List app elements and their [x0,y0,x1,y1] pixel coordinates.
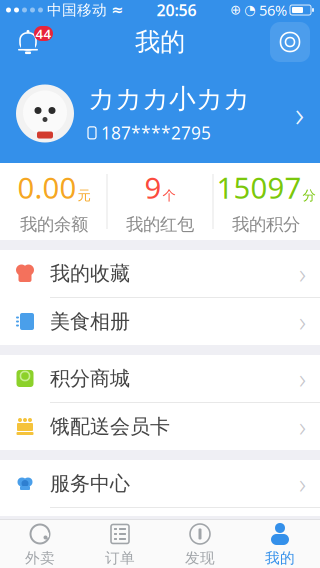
staticText: › [299,409,306,444]
button[interactable]: 15097 [213,163,318,240]
staticText: › [299,361,306,396]
staticText: › [299,466,306,501]
staticText: 分 [302,187,315,204]
button[interactable]: Notifications [10,21,54,63]
staticText: 我的积分 [232,214,300,235]
button[interactable]: 外卖 [0,520,80,568]
staticText: 我的余额 [20,214,88,235]
button[interactable]: 0.00 [1,163,106,240]
staticText: 187****2795 [101,121,211,144]
staticText: ≈ [111,2,123,18]
staticText: 中国移动 [47,1,107,19]
staticText: 56% [259,0,287,20]
staticText: 元 [77,187,90,204]
button[interactable]: 美食相册 [0,298,320,345]
button[interactable]: 积分商城 [0,355,320,403]
staticText: ⊕ [230,2,241,17]
button[interactable]: 饿配送会员卡 [0,403,320,450]
staticText: 我的 [135,26,185,57]
staticText: › [295,90,304,136]
staticText: 美食相册 [50,309,130,334]
staticText: 20:56 [156,0,196,21]
staticText: › [299,256,306,291]
staticText: 15097 [216,168,301,207]
staticText: › [299,304,306,339]
staticText: 9 [144,168,161,207]
staticText: 服务中心 [50,471,130,496]
staticText: 外卖 [25,549,55,567]
button[interactable]: カカカ小カカ [0,64,320,163]
staticText: ◔ [244,2,256,17]
staticText: 44 [35,25,51,42]
staticText: 个 [162,187,175,204]
button[interactable]: Settings [270,22,310,62]
staticText: カカカ小カカ [88,83,250,115]
staticText: 我的 [265,549,295,567]
staticText: 我的红包 [126,214,194,235]
button[interactable]: 我的 [240,520,320,568]
staticText: 0.00 [17,168,76,207]
button[interactable]: 9 [107,163,212,240]
button[interactable]: 我的收藏 [0,250,320,298]
button[interactable]: 发现 [160,520,240,568]
button[interactable]: 订单 [80,520,160,568]
button[interactable]: 服务中心 [0,460,320,508]
staticText: 积分商城 [50,366,130,391]
staticText: 订单 [105,549,135,567]
staticText: 饿配送会员卡 [50,414,170,439]
staticText: 发现 [185,549,215,567]
staticText: 我的收藏 [50,261,130,286]
